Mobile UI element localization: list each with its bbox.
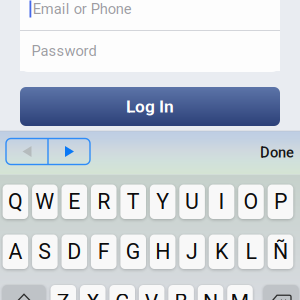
button[interactable]: Done (257, 140, 297, 164)
staticText: W (35, 189, 54, 214)
button[interactable]: Shift (2, 285, 45, 300)
button[interactable]: A (3, 234, 28, 269)
staticText: Ñ (273, 239, 288, 264)
button[interactable]: Password (20, 31, 280, 71)
button[interactable]: Ñ (268, 234, 293, 269)
staticText: Log In (126, 96, 174, 117)
staticText: H (155, 239, 170, 264)
button[interactable]: D (61, 234, 87, 269)
staticText: T (127, 189, 140, 214)
button[interactable]: S (32, 234, 58, 269)
staticText: E (68, 189, 80, 214)
button[interactable]: K (209, 234, 234, 269)
staticText: M (230, 290, 249, 300)
button[interactable]: L (238, 234, 264, 269)
staticText: I (219, 189, 225, 214)
button[interactable]: Previous or next field (6, 138, 90, 164)
staticText: U (185, 189, 199, 214)
staticText: Done (260, 144, 294, 161)
button[interactable]: Delete (263, 285, 298, 300)
button[interactable]: Y (150, 184, 175, 219)
button[interactable]: H (150, 234, 175, 269)
staticText: G (126, 239, 141, 264)
staticText: X (86, 290, 99, 300)
staticText: C (115, 290, 129, 300)
button[interactable]: X (80, 285, 106, 300)
staticText: Email or Phone (33, 0, 132, 18)
button[interactable]: G (120, 234, 146, 269)
button[interactable]: Z (50, 285, 76, 300)
button[interactable]: R (91, 184, 116, 219)
button[interactable]: C (109, 285, 135, 300)
button[interactable]: V (139, 285, 164, 300)
button[interactable]: I (209, 184, 234, 219)
staticText: L (245, 239, 256, 264)
staticText: S (38, 239, 51, 264)
staticText: F (98, 239, 110, 264)
button[interactable]: N (198, 285, 223, 300)
staticText: V (145, 290, 159, 300)
button[interactable]: T (120, 184, 146, 219)
staticText: O (243, 189, 258, 214)
staticText: Y (156, 189, 169, 214)
button[interactable]: F (91, 234, 116, 269)
staticText: K (215, 239, 228, 264)
button[interactable]: U (179, 184, 205, 219)
button[interactable]: B (168, 285, 194, 300)
staticText: J (186, 239, 198, 264)
button[interactable]: E (61, 184, 87, 219)
button[interactable]: J (179, 234, 205, 269)
staticText: Password (31, 42, 96, 60)
staticText: Z (57, 290, 70, 300)
button[interactable]: W (32, 184, 58, 219)
staticText: Q (8, 189, 23, 214)
staticText: P (274, 189, 287, 214)
staticText: B (175, 290, 188, 300)
button[interactable]: O (238, 184, 264, 219)
staticText: N (203, 290, 218, 300)
staticText: D (67, 239, 81, 264)
button[interactable]: Email or Phone (20, 0, 280, 30)
button[interactable]: M (227, 285, 253, 300)
staticText: R (97, 189, 110, 214)
button[interactable]: P (268, 184, 293, 219)
staticText: A (8, 239, 22, 264)
button[interactable]: Log In (20, 87, 280, 126)
button[interactable]: Q (3, 184, 28, 219)
